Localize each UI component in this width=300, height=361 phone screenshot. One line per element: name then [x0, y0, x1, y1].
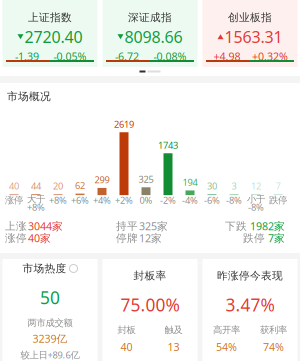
- staticText: 停牌: [116, 232, 138, 245]
- staticText: 跌停: [243, 232, 265, 245]
- staticText: 40: [120, 340, 132, 354]
- staticText: 40: [9, 180, 19, 192]
- staticText: 13: [167, 340, 179, 354]
- staticText: -2%: [160, 194, 176, 206]
- staticText: 8098.66: [124, 26, 182, 47]
- staticText: 194: [182, 176, 197, 188]
- staticText: 涨停: [5, 232, 27, 245]
- staticText: 0%: [139, 194, 152, 206]
- staticText: 2619: [114, 118, 134, 130]
- staticText: 299: [94, 173, 109, 186]
- staticText: -8%: [248, 201, 264, 213]
- staticText: 12: [251, 180, 261, 192]
- staticText: -0.08%: [153, 49, 186, 64]
- staticText: 44: [31, 180, 41, 192]
- staticText: 跌停: [269, 194, 287, 206]
- staticText: 7家: [268, 231, 285, 245]
- staticText: 市场热度: [22, 262, 66, 275]
- staticText: +2%: [115, 194, 133, 206]
- staticText: 大于: [27, 193, 45, 205]
- button[interactable]: 昨涨停今表现: [202, 259, 297, 361]
- staticText: 上证指数: [28, 11, 72, 24]
- staticText: 小于: [247, 193, 265, 205]
- staticText: 涨停: [5, 194, 23, 206]
- staticText: 较上日+89.6亿: [20, 349, 79, 361]
- staticText: 3: [231, 180, 236, 192]
- staticText: +0.32%: [252, 49, 288, 64]
- staticText: 12家: [139, 231, 162, 245]
- staticText: 市场概况: [7, 90, 51, 103]
- staticText: 深证成指: [128, 11, 172, 24]
- button[interactable]: 深证成指: [102, 0, 197, 67]
- staticText: +6%: [71, 194, 89, 206]
- staticText: 62: [75, 179, 85, 192]
- staticText: 上涨: [5, 220, 27, 233]
- staticText: 325: [138, 173, 153, 185]
- staticText: -4%: [182, 194, 198, 206]
- staticText: 325家: [139, 219, 168, 233]
- staticText: 创业板指: [228, 11, 272, 24]
- staticText: 40家: [28, 231, 51, 245]
- button[interactable]: 封板率: [102, 259, 197, 361]
- staticText: -0.05%: [53, 49, 86, 64]
- staticText: 高开率: [213, 324, 240, 336]
- staticText: +8%: [49, 194, 67, 206]
- staticText: 封板率: [133, 269, 166, 282]
- staticText: +4.98: [213, 49, 240, 64]
- staticText: 1743: [158, 139, 178, 151]
- staticText: 触及: [164, 324, 182, 336]
- button[interactable]: 市场热度: [2, 259, 97, 361]
- staticText: 75.00%: [120, 293, 179, 316]
- staticText: 74%: [263, 340, 284, 354]
- staticText: 下跌: [225, 220, 247, 233]
- staticText: 两市成交额: [27, 317, 72, 328]
- staticText: 昨涨停今表现: [217, 269, 283, 282]
- staticText: 54%: [216, 340, 237, 354]
- staticText: 3044家: [28, 219, 63, 233]
- staticText: 3239亿: [32, 331, 67, 346]
- staticText: 获利率: [260, 324, 287, 336]
- staticText: -6.72: [115, 49, 139, 64]
- staticText: 3.47%: [225, 293, 274, 316]
- staticText: -8%: [226, 194, 242, 206]
- staticText: 30: [207, 180, 217, 192]
- staticText: 1982家: [250, 219, 285, 233]
- staticText: 50: [40, 286, 60, 309]
- button[interactable]: 上证指数: [2, 0, 97, 67]
- staticText: +4%: [93, 194, 111, 206]
- button[interactable]: 创业板指: [202, 0, 297, 67]
- staticText: 封板: [117, 324, 135, 336]
- staticText: 7: [275, 180, 280, 192]
- staticText: +8%: [27, 201, 45, 213]
- staticText: 持平: [116, 220, 138, 233]
- staticText: -1.39: [15, 49, 39, 64]
- staticText: -6%: [204, 194, 220, 206]
- staticText: 2720.40: [24, 26, 82, 47]
- staticText: 1563.31: [224, 26, 282, 47]
- staticText: 20: [53, 180, 63, 192]
